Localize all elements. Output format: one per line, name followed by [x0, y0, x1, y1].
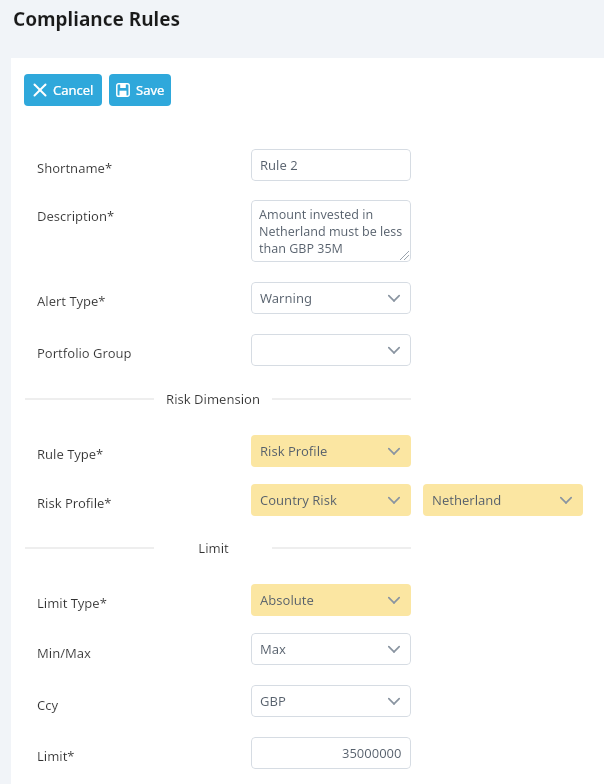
staticText: GBP	[260, 692, 286, 710]
staticText: Limit*	[37, 747, 75, 765]
button[interactable]: Save	[109, 74, 171, 106]
button[interactable]: Rule 2	[251, 149, 411, 181]
staticText: Amount invested in Netherland must be le…	[259, 206, 403, 257]
button[interactable]: Netherland	[423, 484, 583, 516]
staticText: Limit	[198, 539, 229, 557]
button[interactable]: Cancel	[24, 74, 102, 106]
staticText: Alert Type*	[37, 292, 106, 310]
button[interactable]: Absolute	[251, 584, 411, 616]
staticText: Country Risk	[260, 491, 337, 509]
staticText: Ccy	[37, 696, 59, 714]
staticText: Rule Type*	[37, 445, 104, 463]
staticText: Compliance Rules	[13, 6, 181, 32]
button[interactable]: 35000000	[251, 737, 411, 769]
button[interactable]: Warning	[251, 282, 411, 314]
staticText: Save	[136, 81, 165, 99]
staticText: Shortname*	[37, 159, 113, 177]
button[interactable]: Country Risk	[251, 484, 411, 516]
staticText: Risk Profile*	[37, 494, 112, 512]
button[interactable]: Max	[251, 633, 411, 665]
staticText: Absolute	[260, 591, 314, 609]
button[interactable]: Risk Profile	[251, 435, 411, 467]
button[interactable]: GBP	[251, 685, 411, 717]
staticText: Cancel	[53, 81, 94, 99]
staticText: Description*	[37, 207, 115, 225]
button[interactable]: Amount invested in Netherland must be le…	[251, 200, 411, 262]
staticText: Warning	[260, 289, 312, 307]
staticText: Min/Max	[37, 644, 91, 662]
staticText: Portfolio Group	[37, 344, 132, 362]
staticText: Risk Profile	[260, 442, 328, 460]
button[interactable]	[251, 334, 411, 366]
staticText: Max	[260, 640, 286, 658]
staticText: 35000000	[342, 744, 402, 762]
staticText: Netherland	[432, 491, 502, 509]
staticText: Rule 2	[260, 156, 298, 174]
staticText: Limit Type*	[37, 594, 107, 612]
staticText: Risk Dimension	[166, 390, 260, 408]
